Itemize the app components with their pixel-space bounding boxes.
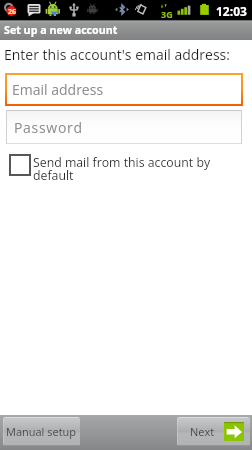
button[interactable]: Send mail from this account by default xyxy=(9,154,243,183)
staticText: Set up a new account xyxy=(4,23,118,38)
button[interactable]: Manual setup xyxy=(3,417,80,446)
staticText: 3G xyxy=(161,8,173,20)
staticText: Email address xyxy=(12,80,104,99)
button[interactable]: Password xyxy=(6,110,242,144)
staticText: Send mail from this account by default xyxy=(33,154,243,183)
staticText: 26 xyxy=(8,7,17,17)
staticText: Next xyxy=(190,424,215,439)
button[interactable]: Email address xyxy=(5,73,243,106)
staticText: 12:03 xyxy=(216,3,247,19)
staticText: Password xyxy=(14,118,83,137)
button[interactable]: Next xyxy=(177,417,250,446)
other: Next xyxy=(224,422,244,441)
staticText: Manual setup xyxy=(6,424,77,439)
staticText: Enter this account's email address: xyxy=(4,45,230,64)
